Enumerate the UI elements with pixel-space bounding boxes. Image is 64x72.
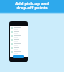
button[interactable] bbox=[10, 38, 28, 42]
staticText: Add pick-up and drop-off points bbox=[0, 1, 64, 11]
button[interactable] bbox=[10, 26, 28, 30]
button[interactable] bbox=[10, 30, 28, 34]
button[interactable] bbox=[10, 50, 28, 54]
button[interactable] bbox=[10, 46, 28, 50]
button[interactable] bbox=[13, 55, 24, 58]
button[interactable] bbox=[10, 34, 28, 38]
button[interactable] bbox=[10, 42, 28, 46]
